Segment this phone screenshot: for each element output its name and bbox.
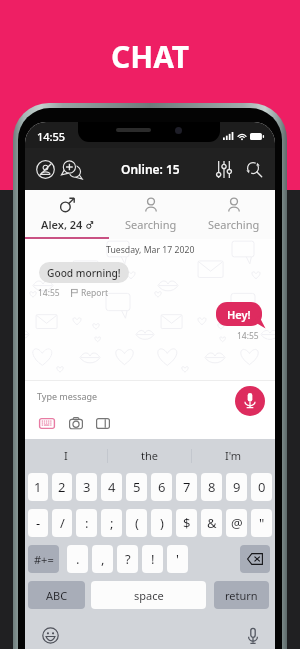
- staticText: 1: [34, 478, 42, 496]
- staticText: Type message: [37, 390, 98, 402]
- button[interactable]: 5: [126, 473, 147, 501]
- staticText: 14:55: [38, 287, 60, 299]
- button[interactable]: ?: [117, 545, 138, 573]
- staticText: (: [135, 514, 139, 532]
- staticText: the: [141, 448, 158, 463]
- staticText: @: [231, 514, 243, 532]
- staticText: I'm: [225, 448, 242, 463]
- staticText: 2: [58, 478, 66, 496]
- button[interactable]: ABC: [28, 581, 85, 609]
- button[interactable]: Report: [71, 286, 109, 300]
- button[interactable]: return: [214, 581, 269, 609]
- staticText: 0: [258, 478, 266, 496]
- button[interactable]: @: [226, 509, 247, 537]
- button[interactable]: Backspace: [240, 545, 270, 573]
- button[interactable]: #+=: [28, 545, 59, 573]
- button[interactable]: 0: [251, 473, 272, 501]
- staticText: CHAT: [111, 36, 190, 77]
- button[interactable]: $: [176, 509, 197, 537]
- button[interactable]: 1: [28, 473, 48, 501]
- button[interactable]: ': [167, 545, 188, 573]
- button[interactable]: ,: [92, 545, 113, 573]
- staticText: 5: [133, 478, 141, 496]
- staticText: 8: [208, 478, 216, 496]
- staticText: 6: [158, 478, 166, 496]
- button[interactable]: Keyboard: [39, 418, 55, 429]
- staticText: Tuesday, Mar 17 2020: [106, 244, 195, 256]
- button[interactable]: /: [52, 509, 72, 537]
- staticText: Searching: [208, 217, 260, 232]
- staticText: 9: [233, 478, 241, 496]
- button[interactable]: Filters: [212, 157, 236, 181]
- button[interactable]: 2: [52, 473, 72, 501]
- staticText: .: [76, 550, 80, 568]
- button[interactable]: Searching: [192, 190, 275, 239]
- staticText: ?: [125, 550, 131, 568]
- button[interactable]: 8: [201, 473, 222, 501]
- staticText: 3: [83, 478, 91, 496]
- staticText: Good morning!: [47, 266, 121, 280]
- staticText: #+=: [34, 552, 54, 567]
- button[interactable]: &: [201, 509, 222, 537]
- button[interactable]: !: [142, 545, 163, 573]
- button[interactable]: I: [25, 439, 107, 472]
- staticText: 14:55: [37, 129, 66, 144]
- staticText: !: [151, 550, 155, 568]
- button[interactable]: 4: [101, 473, 122, 501]
- button[interactable]: ": [251, 509, 272, 537]
- button[interactable]: .: [67, 545, 88, 573]
- button[interactable]: Alex, 24: [25, 190, 109, 239]
- button[interactable]: New chat: [59, 157, 83, 181]
- button[interactable]: I'm: [192, 439, 275, 472]
- staticText: -: [36, 514, 41, 532]
- staticText: ": [259, 514, 265, 532]
- staticText: ': [176, 550, 179, 568]
- staticText: 4: [108, 478, 116, 496]
- button[interactable]: space: [91, 581, 206, 609]
- staticText: $: [183, 514, 191, 532]
- button[interactable]: 7: [176, 473, 197, 501]
- button[interactable]: Record voice message: [235, 386, 265, 416]
- staticText: space: [134, 588, 164, 603]
- button[interactable]: 9: [226, 473, 247, 501]
- staticText: 14:55: [237, 330, 259, 342]
- staticText: &: [207, 514, 217, 532]
- staticText: :: [85, 514, 89, 532]
- button[interactable]: Gallery: [96, 418, 110, 429]
- button[interactable]: Camera: [69, 417, 83, 429]
- button[interactable]: Emoji: [42, 627, 59, 644]
- staticText: Searching: [125, 217, 177, 232]
- button[interactable]: Find next: [242, 157, 266, 181]
- button[interactable]: :: [76, 509, 97, 537]
- staticText: return: [225, 588, 258, 603]
- staticText: 7: [183, 478, 191, 496]
- button[interactable]: -: [28, 509, 48, 537]
- staticText: Alex, 24: [41, 217, 83, 232]
- button[interactable]: Searching: [109, 190, 192, 239]
- staticText: Report: [81, 287, 109, 299]
- staticText: ,: [101, 550, 105, 568]
- button[interactable]: ): [151, 509, 172, 537]
- staticText: ): [160, 514, 164, 532]
- staticText: /: [60, 514, 65, 532]
- button[interactable]: Blocked users: [33, 157, 57, 181]
- staticText: Online: 15: [121, 161, 180, 177]
- staticText: Hey!: [227, 307, 251, 322]
- button[interactable]: 3: [76, 473, 97, 501]
- button[interactable]: the: [108, 439, 191, 472]
- staticText: I: [64, 448, 68, 463]
- staticText: ABC: [46, 588, 68, 603]
- button[interactable]: (: [126, 509, 147, 537]
- button[interactable]: Dictation: [248, 628, 258, 644]
- button[interactable]: ;: [101, 509, 122, 537]
- button[interactable]: 6: [151, 473, 172, 501]
- staticText: ;: [110, 514, 114, 532]
